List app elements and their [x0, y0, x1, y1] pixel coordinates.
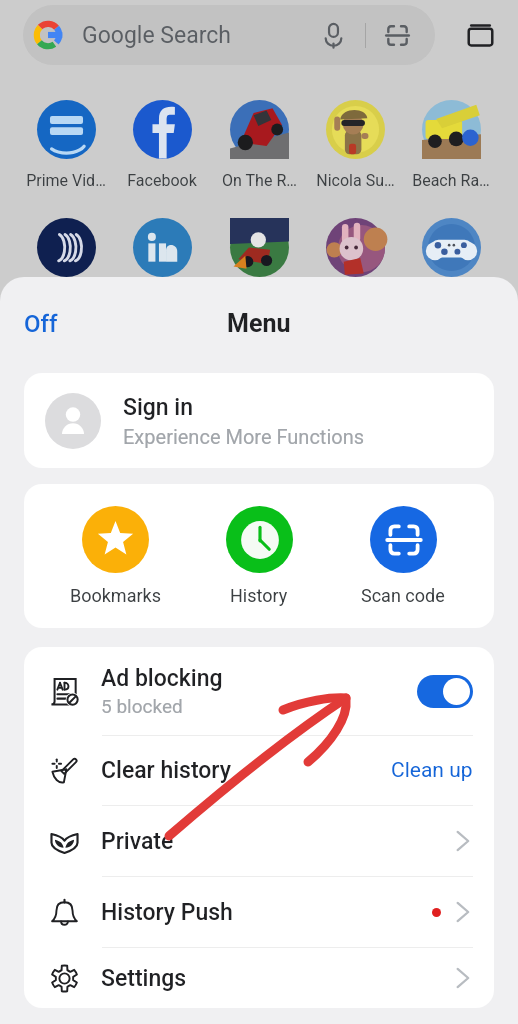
- staticText: Experience More Functions: [123, 425, 365, 448]
- staticText: History: [230, 585, 288, 606]
- staticText: Clean up: [391, 758, 473, 783]
- staticText: Prime Vid…: [26, 171, 106, 190]
- staticText: Google Search: [82, 22, 231, 49]
- button[interactable]: Prime Vid…: [22, 100, 110, 190]
- button[interactable]: [118, 218, 206, 277]
- staticText: Bookmarks: [70, 585, 161, 606]
- button[interactable]: On The R…: [215, 100, 303, 190]
- button[interactable]: [215, 218, 303, 277]
- button[interactable]: Scan code: [331, 506, 475, 606]
- button[interactable]: Tabs: [456, 11, 504, 59]
- button[interactable]: [22, 218, 110, 277]
- button[interactable]: Facebook: [118, 100, 206, 190]
- staticText: Scan code: [361, 585, 445, 606]
- staticText: Ad blocking: [101, 665, 223, 692]
- button[interactable]: History Push: [24, 877, 494, 947]
- staticText: Beach Ra…: [412, 171, 490, 190]
- button[interactable]: Private: [24, 806, 494, 876]
- button[interactable]: Ad blocking toggle: [417, 675, 473, 708]
- button[interactable]: [311, 218, 399, 277]
- button[interactable]: Beach Ra…: [407, 100, 495, 190]
- button[interactable]: [407, 218, 495, 277]
- button[interactable]: Off: [10, 302, 72, 346]
- button[interactable]: Sign in: [24, 373, 494, 468]
- staticText: On The R…: [222, 171, 297, 190]
- staticText: History Push: [101, 899, 432, 926]
- staticText: Sign in: [123, 394, 194, 421]
- button[interactable]: Ad blocking: [24, 647, 494, 735]
- staticText: 5 blocked: [101, 695, 183, 717]
- button[interactable]: Google Search: [23, 5, 435, 65]
- staticText: Settings: [101, 965, 449, 992]
- staticText: Off: [24, 310, 58, 338]
- button[interactable]: Bookmarks: [43, 506, 187, 606]
- button[interactable]: Settings: [24, 948, 494, 1008]
- button[interactable]: History: [187, 506, 331, 606]
- button[interactable]: Nicola Su…: [311, 100, 399, 190]
- staticText: Facebook: [127, 171, 197, 190]
- staticText: Menu: [227, 309, 291, 338]
- staticText: Nicola Su…: [316, 171, 395, 190]
- button[interactable]: Clear history: [24, 736, 494, 805]
- staticText: Private: [101, 828, 449, 855]
- staticText: Clear history: [101, 757, 391, 784]
